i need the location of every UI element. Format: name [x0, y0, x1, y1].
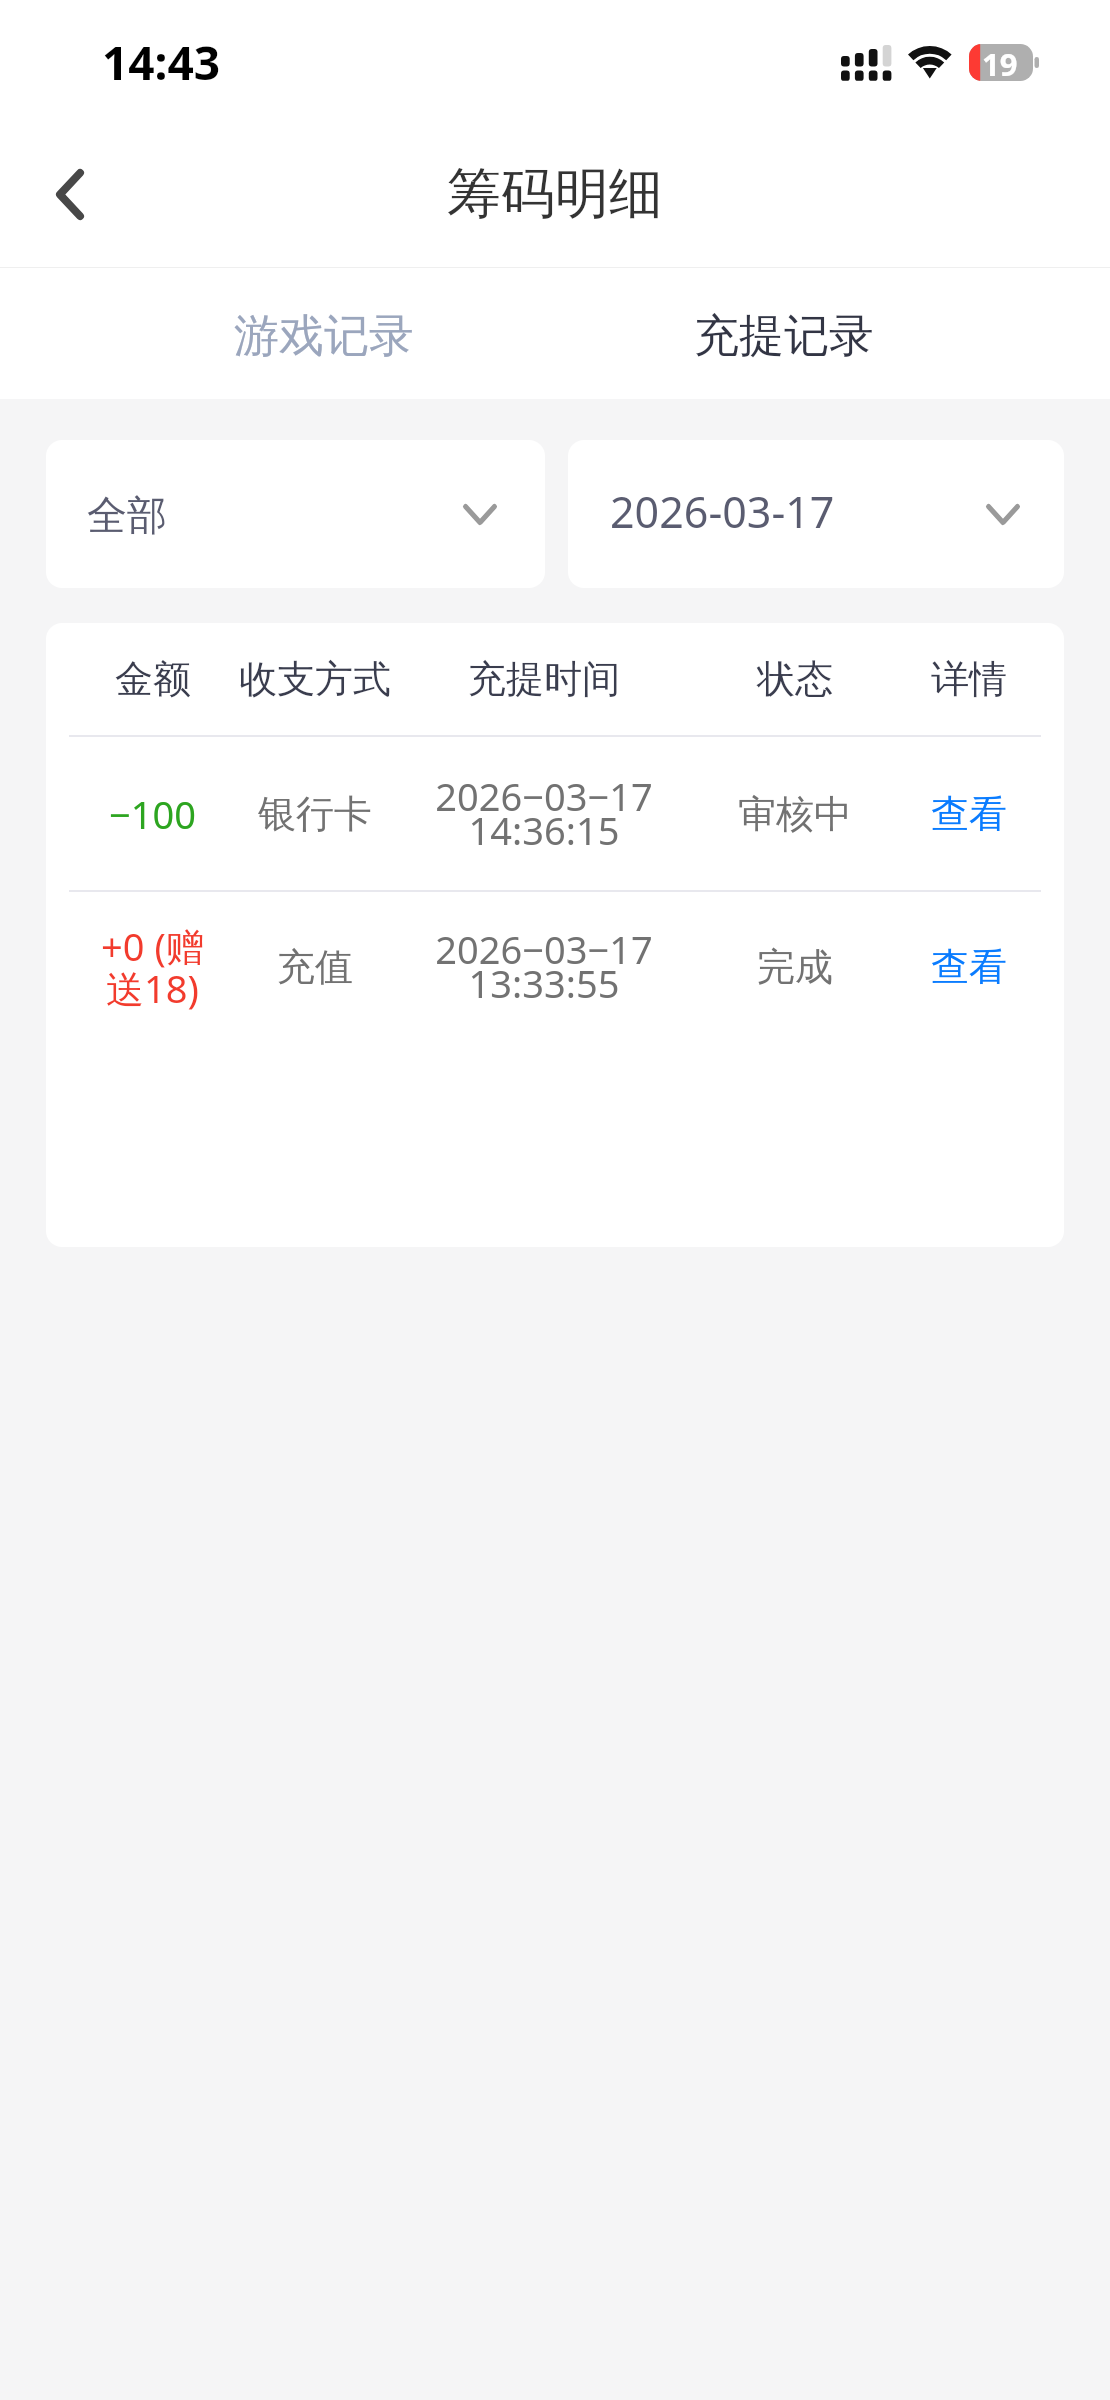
staticText: 状态: [757, 655, 833, 703]
staticText: 金额: [115, 655, 191, 703]
staticText: 查看: [931, 790, 1007, 838]
staticText: 查看: [931, 943, 1007, 991]
button[interactable]: 全部: [46, 440, 545, 588]
staticText: 详情: [931, 655, 1007, 703]
staticText: 完成: [757, 943, 833, 991]
staticText: 充值: [277, 943, 353, 991]
staticText: 银行卡: [258, 790, 372, 838]
staticText: 全部: [87, 490, 167, 540]
staticText: 2026-03-17: [610, 482, 835, 541]
staticText: 2026−03−17 13:33:55: [435, 923, 653, 1010]
staticText: 筹码明细: [447, 160, 663, 228]
staticText: 充提记录: [694, 308, 874, 365]
button[interactable]: 充提记录: [555, 268, 1018, 399]
button[interactable]: 查看: [896, 892, 1041, 1041]
staticText: +0 (赠 送18): [101, 920, 204, 1014]
staticText: 19: [982, 43, 1018, 80]
staticText: 审核中: [738, 790, 852, 838]
staticText: 14:43: [102, 31, 221, 94]
button[interactable]: Back: [10, 128, 130, 267]
staticText: −100: [109, 788, 196, 840]
staticText: 收支方式: [239, 655, 391, 703]
button[interactable]: 查看: [896, 737, 1041, 890]
staticText: 充提时间: [468, 655, 620, 703]
staticText: 2026−03−17 14:36:15: [435, 770, 653, 857]
staticText: 游戏记录: [234, 308, 414, 365]
button[interactable]: 2026-03-17: [568, 440, 1064, 588]
button[interactable]: 游戏记录: [92, 268, 555, 399]
